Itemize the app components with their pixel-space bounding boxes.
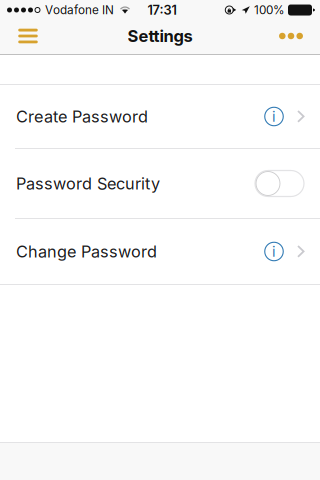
staticText: Vodafone IN (45, 3, 114, 17)
button[interactable]: Create Password (0, 85, 320, 148)
button[interactable]: Change Password (0, 219, 320, 284)
staticText: Change Password (16, 242, 157, 261)
button[interactable]: Menu (6, 20, 50, 52)
staticText: 100% (254, 3, 285, 17)
button[interactable]: More options (269, 20, 313, 52)
button[interactable]: Password Security (0, 149, 320, 218)
staticText: Create Password (16, 107, 148, 126)
staticText: Password Security (16, 174, 160, 193)
staticText: 17:31 (147, 2, 176, 18)
staticText: Settings (127, 26, 192, 46)
staticText: i (272, 243, 276, 260)
staticText: i (272, 108, 276, 125)
